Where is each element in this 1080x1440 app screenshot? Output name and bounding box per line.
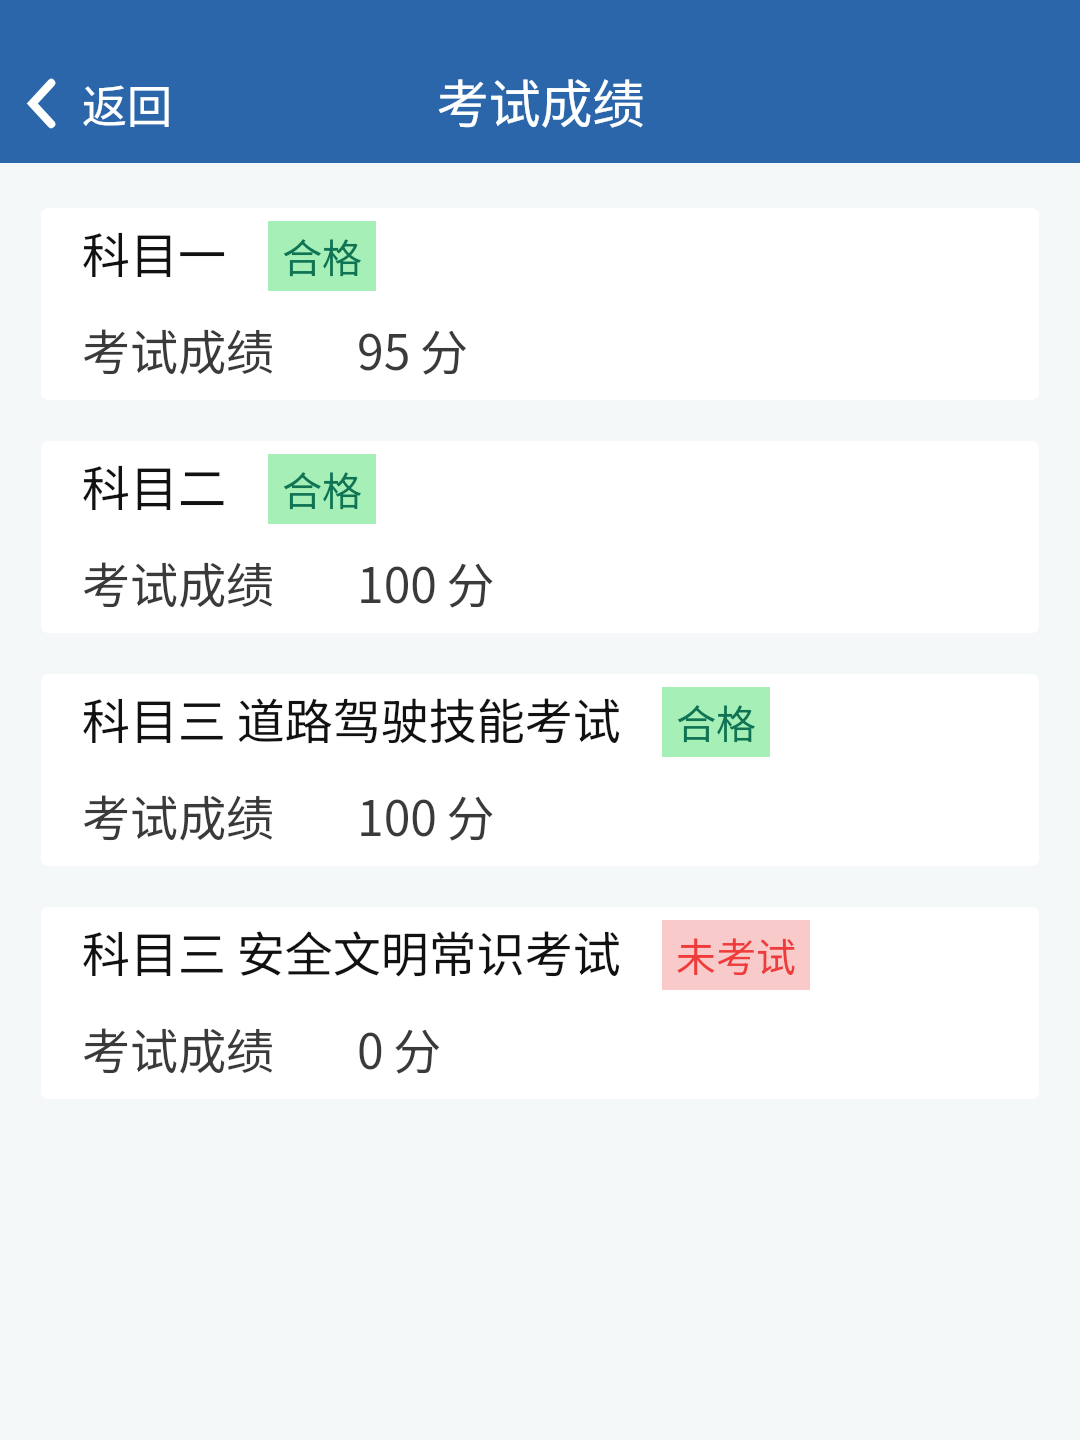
button[interactable]: 科目三 道路驾驶技能考试 xyxy=(41,674,1039,866)
button[interactable]: 返回 xyxy=(20,63,181,144)
staticText: 考试成绩 xyxy=(82,314,275,384)
staticText: 科目三 安全文明常识考试 xyxy=(82,916,621,986)
staticText: 考试成绩 xyxy=(82,1013,275,1083)
staticText: 科目一 xyxy=(82,217,227,287)
staticText: 合格 xyxy=(282,460,362,518)
staticText: 科目三 道路驾驶技能考试 xyxy=(82,683,621,753)
staticText: 100 分 xyxy=(357,547,495,617)
button[interactable]: 科目二 xyxy=(41,441,1039,633)
staticText: 合格 xyxy=(676,693,756,751)
staticText: 95 分 xyxy=(357,314,468,384)
staticText: 考试成绩 xyxy=(82,780,275,850)
staticText: 未考试 xyxy=(676,926,796,984)
staticText: 考试成绩 xyxy=(82,547,275,617)
staticText: 科目二 xyxy=(82,450,227,520)
staticText: 考试成绩 xyxy=(436,63,645,138)
staticText: 返回 xyxy=(82,71,173,136)
staticText: 0 分 xyxy=(357,1013,442,1083)
button[interactable]: 科目一 xyxy=(41,208,1039,400)
staticText: 合格 xyxy=(282,227,362,285)
button[interactable]: 科目三 安全文明常识考试 xyxy=(41,907,1039,1099)
staticText: 100 分 xyxy=(357,780,495,850)
